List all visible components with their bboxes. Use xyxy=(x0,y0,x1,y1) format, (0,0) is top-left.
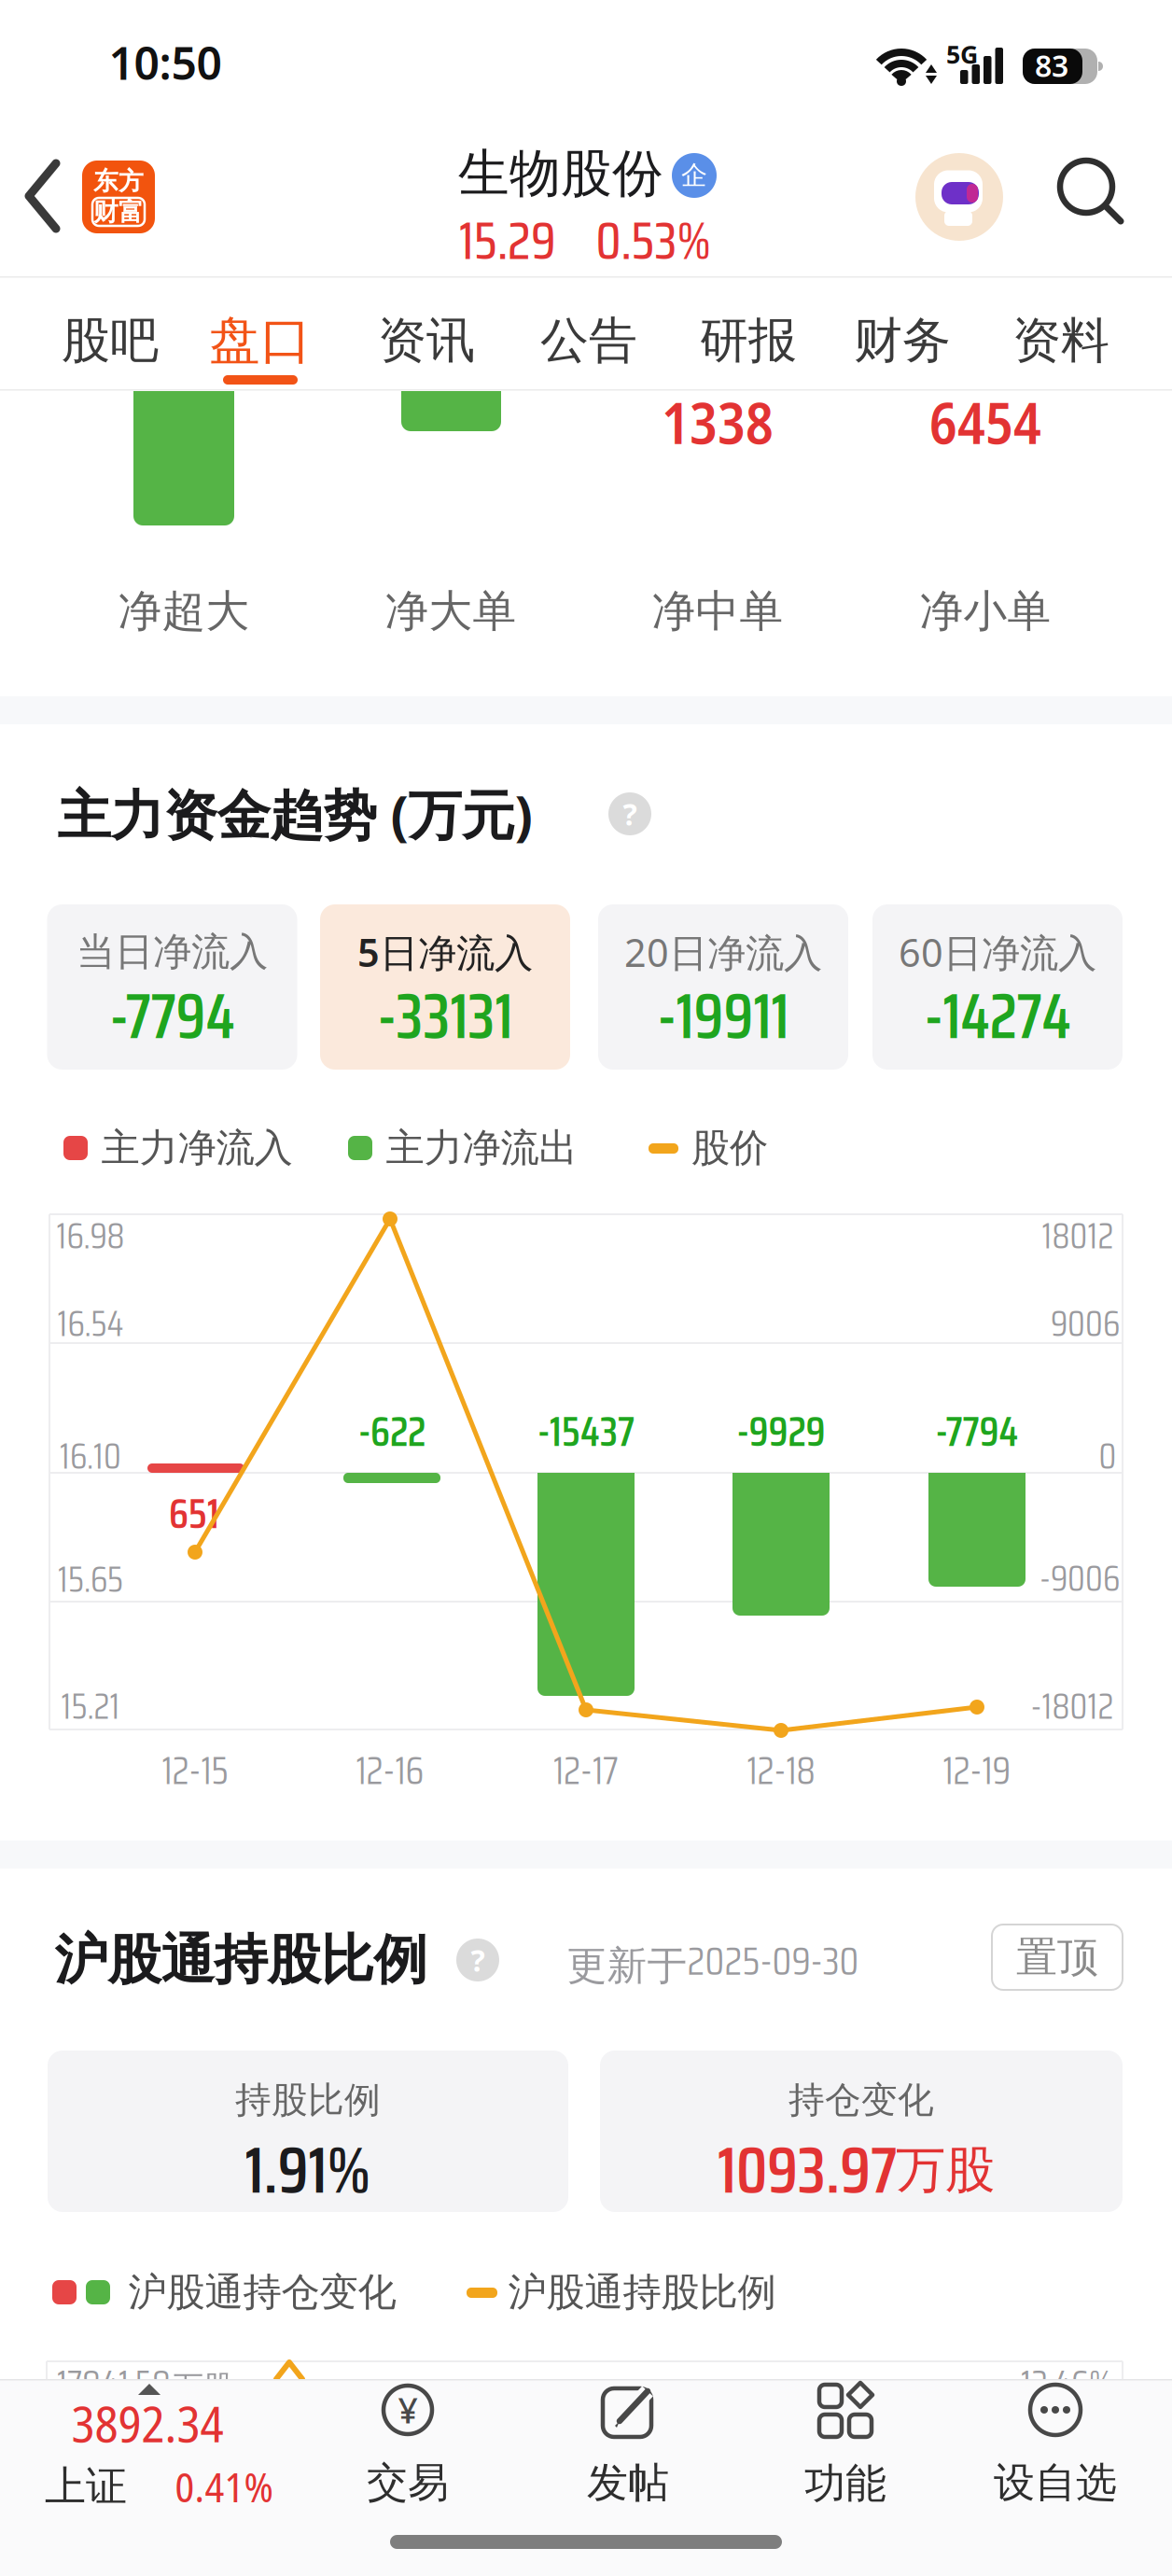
staticText: 更新于2025-09-30 xyxy=(567,1930,859,1992)
staticText: 16.54 xyxy=(57,1295,124,1352)
staticText: 万股 xyxy=(174,2368,233,2405)
staticText: 上证 xyxy=(45,2461,127,2512)
staticText: 持股比例 xyxy=(235,2078,381,2122)
staticText: 设自选 xyxy=(994,2457,1117,2508)
staticText: 持仓变化 xyxy=(788,2078,934,2122)
button[interactable]: 资讯 xyxy=(378,311,475,371)
staticText: 研报 xyxy=(700,311,797,371)
button[interactable]: 设自选 xyxy=(994,2383,1117,2508)
staticText: 净小单 xyxy=(920,585,1051,638)
staticText: 1093.97 xyxy=(718,2119,897,2221)
button[interactable]: 持股比例 xyxy=(48,2051,568,2212)
staticText: -9929 xyxy=(737,1399,825,1464)
staticText: 9006 xyxy=(1051,1295,1120,1352)
staticText: 生物股份 xyxy=(458,142,663,205)
staticText: 盘口 xyxy=(209,309,312,372)
button[interactable]: 股吧 xyxy=(62,311,159,371)
button[interactable]: 帮助 xyxy=(456,1939,499,1981)
button[interactable]: 研报 xyxy=(700,311,797,371)
staticText: 12-19 xyxy=(943,1740,1011,1801)
staticText: 置顶 xyxy=(1016,1932,1098,1982)
staticText: ¥ xyxy=(398,2387,418,2433)
staticText: 资料 xyxy=(1012,311,1109,371)
staticText: -622 xyxy=(358,1399,426,1464)
staticText: 东方 xyxy=(93,166,144,196)
staticText: 财务 xyxy=(854,311,951,371)
staticText: 股吧 xyxy=(62,311,159,371)
staticText: 15.29 xyxy=(459,200,556,282)
staticText: 主力净流入 xyxy=(101,1124,293,1172)
staticText: 企 xyxy=(681,159,707,192)
button[interactable]: 当日净流入 xyxy=(47,904,297,1070)
button[interactable]: 帮助 xyxy=(608,792,651,835)
staticText: 12-18 xyxy=(747,1740,815,1801)
staticText: -18012 xyxy=(1031,1678,1114,1735)
button[interactable]: 持仓变化 xyxy=(600,2051,1123,2212)
button[interactable]: 东方财富 xyxy=(82,161,155,233)
button[interactable]: 盘口 xyxy=(209,309,312,372)
staticText: 沪股通持股比例 xyxy=(55,1927,427,1993)
button[interactable]: 资料 xyxy=(1012,311,1109,371)
staticText: 主力净流出 xyxy=(386,1124,577,1172)
staticText: 20日净流入 xyxy=(624,926,822,978)
staticText: 16.98 xyxy=(56,1207,125,1264)
staticText: -7794 xyxy=(110,967,235,1065)
staticText: 功能 xyxy=(804,2458,886,2509)
staticText: 净中单 xyxy=(652,585,783,638)
button[interactable]: 发帖 xyxy=(587,2383,669,2508)
button[interactable]: 60日净流入 xyxy=(872,904,1123,1070)
button[interactable]: 置顶 xyxy=(992,1925,1123,1990)
staticText: 沪股通持股比例 xyxy=(508,2269,776,2316)
staticText: 0 xyxy=(1099,1428,1116,1484)
staticText: -9006 xyxy=(1039,1550,1120,1607)
staticText: 财富 xyxy=(93,197,144,227)
staticText: 净超大 xyxy=(118,585,250,638)
staticText: -14274 xyxy=(924,967,1071,1065)
staticText: 15.65 xyxy=(58,1551,123,1608)
staticText: 17841.58 xyxy=(57,2354,171,2413)
button[interactable]: AI助手 xyxy=(915,153,1003,241)
staticText: 12.46% xyxy=(1021,2354,1112,2413)
staticText: 83 xyxy=(1035,46,1068,85)
staticText: 0.53% xyxy=(596,200,711,282)
staticText: 交易 xyxy=(367,2457,449,2508)
button[interactable]: 返回 xyxy=(22,159,63,233)
staticText: -33131 xyxy=(377,967,513,1065)
staticText: 发帖 xyxy=(587,2457,669,2508)
staticText: 1.91% xyxy=(245,2119,371,2221)
staticText: 股价 xyxy=(691,1124,768,1172)
staticText: -15437 xyxy=(537,1399,635,1464)
staticText: 12-17 xyxy=(553,1740,619,1801)
staticText: 5日净流入 xyxy=(357,926,533,978)
button[interactable]: 20日净流入 xyxy=(598,904,848,1070)
staticText: 资讯 xyxy=(378,311,475,371)
staticText: 15.21 xyxy=(61,1678,120,1735)
staticText: ? xyxy=(471,1940,485,1980)
button[interactable]: 搜索 xyxy=(1053,156,1131,234)
staticText: 12-16 xyxy=(356,1740,424,1801)
staticText: -19911 xyxy=(657,967,789,1065)
button[interactable]: 公告 xyxy=(540,311,637,371)
staticText: 0.41% xyxy=(175,2458,273,2514)
button[interactable]: 功能 xyxy=(804,2382,886,2509)
staticText: -7794 xyxy=(935,1399,1019,1464)
button[interactable]: 财务 xyxy=(854,311,951,371)
staticText: 6454 xyxy=(929,383,1041,461)
staticText: 当日净流入 xyxy=(77,928,268,976)
staticText: 万股 xyxy=(896,2139,995,2201)
staticText: ? xyxy=(623,794,637,834)
staticText: 5G xyxy=(946,38,978,71)
staticText: 10:50 xyxy=(109,33,222,92)
staticText: 沪股通持仓变化 xyxy=(128,2269,396,2316)
staticText: 公告 xyxy=(540,311,637,371)
button[interactable]: 3892.34 xyxy=(15,2378,314,2498)
button[interactable]: 5日净流入 xyxy=(320,904,570,1070)
staticText: 主力资金趋势 (万元) xyxy=(57,778,532,849)
button[interactable]: ¥ xyxy=(367,2383,449,2508)
staticText: 净大单 xyxy=(385,585,516,638)
staticText: 1338 xyxy=(662,383,774,461)
staticText: 12-15 xyxy=(162,1740,228,1801)
staticText: 18012 xyxy=(1042,1207,1114,1264)
staticText: 60日净流入 xyxy=(899,926,1096,978)
staticText: 16.10 xyxy=(60,1428,121,1484)
